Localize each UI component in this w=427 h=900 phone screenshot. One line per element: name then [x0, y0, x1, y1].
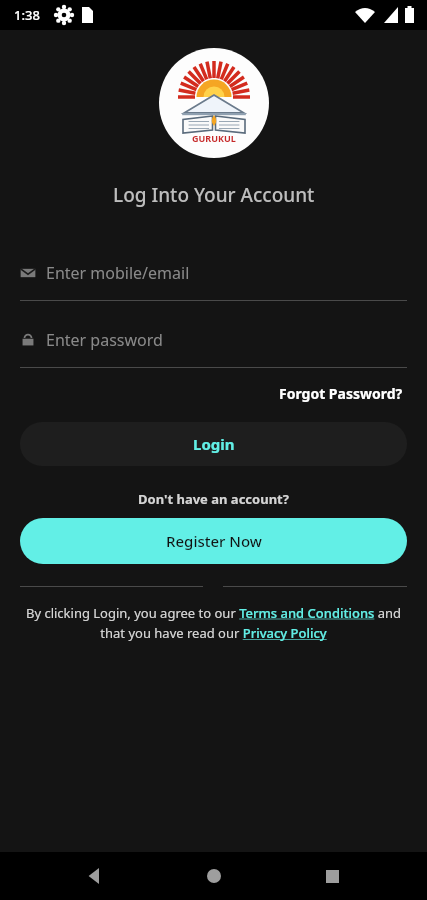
staticText: Forgot Password?	[279, 384, 403, 403]
button[interactable]: By clicking Login, you agree to our Term…	[18, 604, 409, 642]
button[interactable]: Register Now	[20, 518, 407, 564]
staticText: By clicking Login, you agree to our Term…	[18, 604, 409, 642]
staticText: Log Into Your Account	[113, 182, 315, 208]
staticText: Register Now	[166, 531, 262, 551]
staticText: Enter password	[46, 329, 163, 351]
button[interactable]: Forgot Password?	[275, 380, 407, 407]
staticText: Don't have an account?	[138, 490, 289, 508]
staticText: GURUKUL	[192, 132, 236, 144]
staticText: Enter mobile/email	[46, 262, 190, 284]
button[interactable]: Recent apps	[308, 852, 356, 900]
staticText: Login	[193, 434, 235, 454]
button[interactable]: Home	[190, 852, 238, 900]
button[interactable]: Back	[71, 852, 119, 900]
staticText: 1:38	[14, 6, 40, 24]
button[interactable]: Login	[20, 422, 407, 466]
